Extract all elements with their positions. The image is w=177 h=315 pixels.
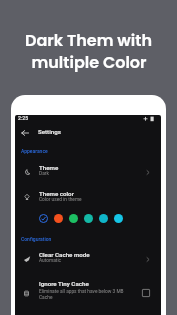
button[interactable]: Theme color option 2 — [51, 211, 66, 225]
staticText: Appearance — [21, 148, 48, 154]
button[interactable]: Theme color option 4 — [81, 211, 96, 225]
staticText: 2:25 — [18, 115, 29, 121]
staticText: Theme — [39, 164, 59, 171]
staticText: Theme color — [39, 190, 74, 197]
staticText: Eliminate all apps that have below 3 MB … — [39, 289, 128, 300]
button[interactable] — [17, 158, 147, 181]
button[interactable] — [17, 184, 147, 207]
button[interactable]: Theme color option 6 — [111, 211, 126, 225]
button[interactable]: Ignore Tiny Cache checkbox — [139, 286, 153, 300]
staticText: Color used in theme — [39, 197, 82, 203]
staticText: Dark Them with — [25, 29, 152, 51]
button[interactable] — [17, 246, 147, 269]
button[interactable]: Theme color option 5 — [96, 211, 111, 225]
staticText: Settings — [38, 128, 61, 135]
staticText: Ignore Tiny Cache — [39, 280, 89, 287]
button[interactable]: Theme color option 3 — [66, 211, 81, 225]
staticText: Automatic — [39, 258, 62, 264]
staticText: multiple Color — [31, 51, 147, 73]
staticText: Configuration — [21, 236, 52, 242]
button[interactable]: Theme color option 1 — [36, 211, 51, 225]
button[interactable] — [17, 276, 147, 304]
button[interactable]: Back — [18, 126, 32, 140]
staticText: Dark — [39, 171, 49, 177]
staticText: Clear Cache mode — [39, 251, 90, 258]
